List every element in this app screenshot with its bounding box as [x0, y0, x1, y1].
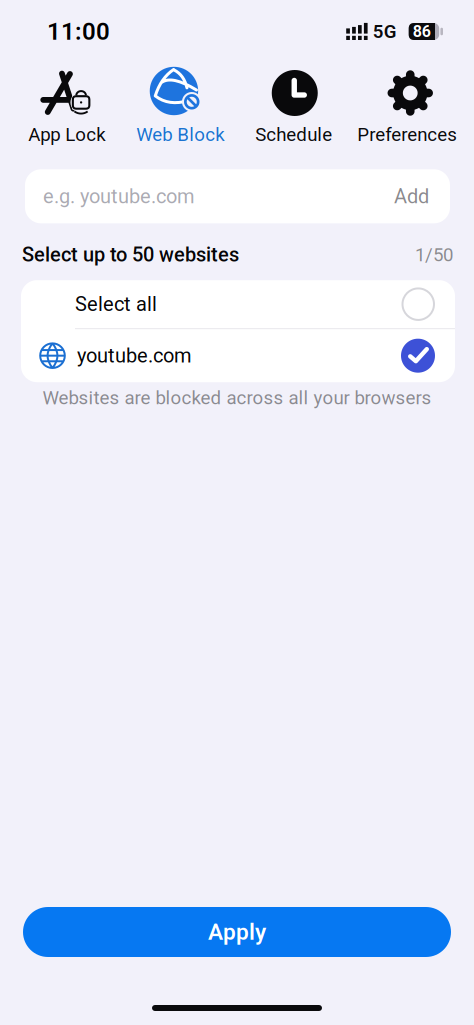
staticText: Select up to 50 websites	[22, 243, 239, 266]
button[interactable]: Add	[394, 185, 429, 208]
staticText: e.g. youtube.com	[43, 185, 195, 208]
button[interactable]: youtube.com	[21, 329, 455, 382]
staticText: 5G	[373, 21, 397, 42]
staticText: 86	[413, 22, 431, 41]
button[interactable]: Apply	[23, 907, 451, 957]
button[interactable]: Web Block	[123, 66, 237, 145]
staticText: 1/50	[415, 244, 453, 265]
staticText: Select all	[75, 293, 157, 316]
button[interactable]: Preferences	[350, 66, 464, 145]
staticText: Websites are blocked across all your bro…	[42, 387, 431, 408]
staticText: Add	[394, 185, 429, 208]
staticText: youtube.com	[77, 344, 192, 367]
button[interactable]: App Lock	[10, 66, 123, 145]
staticText: App Lock	[28, 124, 105, 145]
staticText: Schedule	[255, 124, 332, 145]
button[interactable]: Select all	[21, 280, 455, 328]
staticText: Web Block	[136, 124, 224, 145]
staticText: Apply	[208, 919, 266, 945]
button[interactable]: Schedule	[237, 66, 350, 145]
staticText: Preferences	[357, 124, 457, 145]
staticText: 11:00	[47, 18, 110, 45]
